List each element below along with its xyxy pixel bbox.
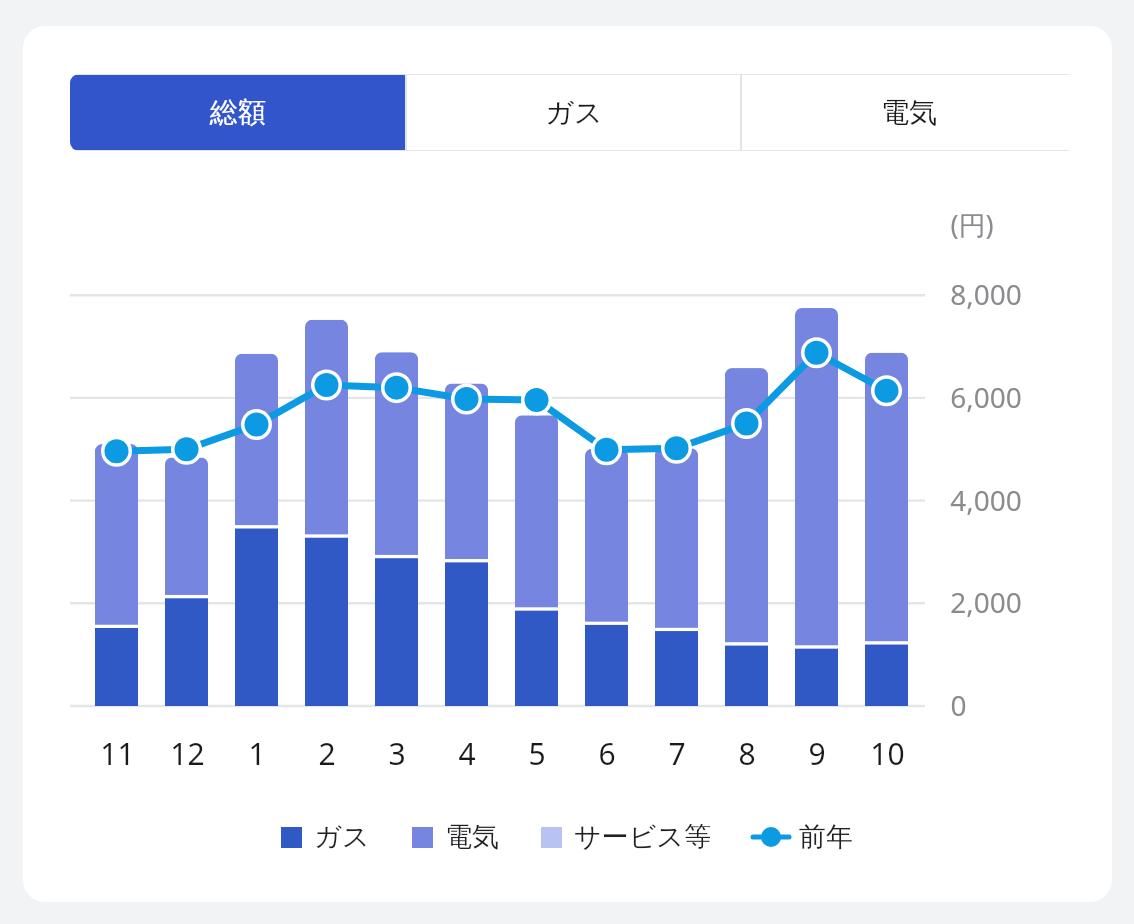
staticText: 2,000 xyxy=(950,583,1022,621)
staticText: 総額 xyxy=(210,95,266,130)
staticText: サービス等 xyxy=(574,820,711,854)
staticText: 4,000 xyxy=(950,481,1022,519)
staticText: 5 xyxy=(528,733,546,774)
button[interactable]: 総額 xyxy=(70,75,405,150)
button[interactable]: ガス xyxy=(407,75,740,150)
button[interactable]: ガス xyxy=(281,820,370,854)
button[interactable]: 電気 xyxy=(412,820,499,854)
button[interactable]: 前年 series xyxy=(753,820,853,854)
staticText: 電気 xyxy=(445,820,499,854)
staticText: 6,000 xyxy=(950,378,1022,416)
staticText: 11 xyxy=(100,733,135,774)
staticText: 3 xyxy=(388,733,406,774)
staticText: 4 xyxy=(458,733,476,774)
staticText: 10 xyxy=(870,733,905,774)
staticText: 電気 xyxy=(881,95,937,130)
staticText: 1 xyxy=(248,733,266,774)
staticText: ガス xyxy=(314,820,370,854)
staticText: (円) xyxy=(950,206,994,243)
staticText: 8,000 xyxy=(950,275,1022,313)
staticText: 2 xyxy=(318,733,336,774)
button[interactable]: 電気 xyxy=(742,75,1076,150)
staticText: 7 xyxy=(668,733,686,774)
staticText: 12 xyxy=(170,733,205,774)
staticText: ガス xyxy=(545,95,603,130)
button[interactable]: サービス等 xyxy=(541,820,711,854)
staticText: 前年 xyxy=(799,820,853,854)
staticText: 9 xyxy=(808,733,826,774)
staticText: 6 xyxy=(598,733,616,774)
staticText: 0 xyxy=(950,686,967,724)
staticText: 8 xyxy=(738,733,756,774)
